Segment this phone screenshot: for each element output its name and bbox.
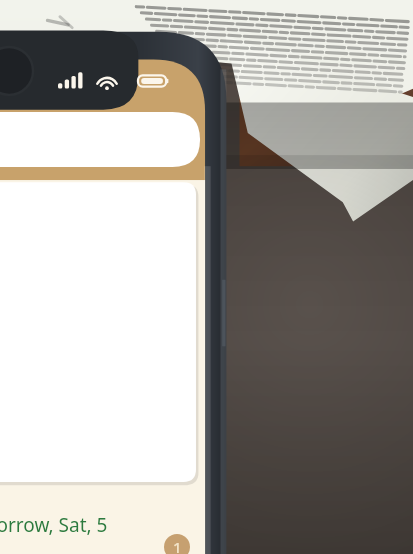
staticText: Tomorrow, Sat, 5 Oct: [0, 512, 118, 538]
other: Wi-Fi: [96, 72, 118, 90]
other: Cellular signal: [58, 72, 86, 90]
staticText: 1: [173, 537, 182, 554]
button[interactable]: 1: [164, 534, 190, 554]
button[interactable]: Tomorrow, Sat, 5 Oct: [0, 512, 118, 538]
other: Battery: [138, 73, 170, 89]
